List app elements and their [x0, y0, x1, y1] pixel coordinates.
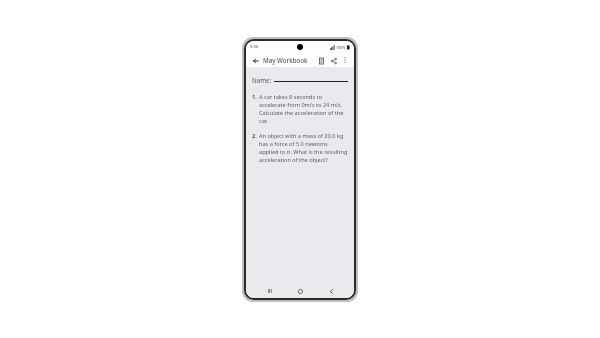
- button[interactable]: Back: [250, 55, 261, 66]
- button[interactable]: Recent apps: [263, 284, 277, 298]
- staticText: A car takes 8 seconds to accelerate from…: [259, 93, 348, 125]
- staticText: 9:30: [250, 44, 259, 50]
- staticText: 2.: [252, 132, 257, 140]
- staticText: Name:: [252, 76, 272, 84]
- button[interactable]: More options: [340, 55, 350, 65]
- staticText: May Workbook: [263, 56, 308, 64]
- staticText: 1.: [252, 93, 257, 101]
- staticText: An object with a mass of 20.0 kg has a f…: [259, 132, 348, 164]
- button[interactable]: Home: [293, 284, 307, 298]
- button[interactable]: Back: [324, 284, 338, 298]
- button[interactable]: Document: [316, 55, 327, 66]
- button[interactable]: Share: [328, 55, 339, 66]
- staticText: 100%: [336, 45, 346, 50]
